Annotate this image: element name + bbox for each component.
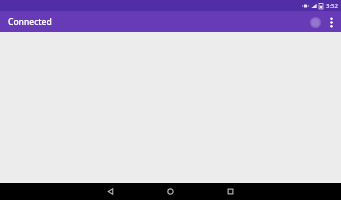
button[interactable]: Back [80, 183, 140, 200]
staticText: 3:52 [326, 2, 338, 10]
button[interactable]: Recent apps [200, 183, 260, 200]
button[interactable]: More options [323, 14, 339, 30]
staticText: Connected [8, 16, 52, 28]
button[interactable]: Home [140, 183, 200, 200]
button[interactable]: Account [307, 14, 323, 30]
